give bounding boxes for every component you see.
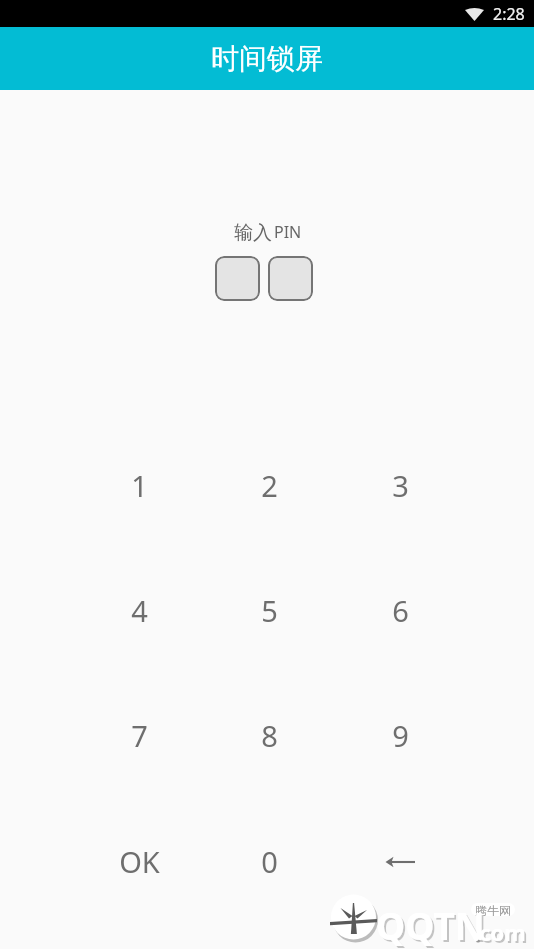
button[interactable]: Backspace: [335, 811, 466, 911]
button[interactable]: 4: [74, 560, 205, 660]
button[interactable]: 7: [74, 685, 205, 785]
staticText: 9: [392, 716, 409, 755]
staticText: PIN: [274, 221, 302, 243]
staticText: OK: [119, 842, 160, 881]
staticText: 7: [131, 716, 148, 755]
button[interactable]: 8: [204, 685, 335, 785]
staticText: 输入: [234, 221, 272, 245]
staticText: 5: [261, 591, 278, 630]
button[interactable]: 1: [74, 435, 205, 535]
staticText: 2: [261, 466, 278, 505]
staticText: 0: [261, 842, 278, 881]
staticText: 4: [131, 591, 148, 630]
staticText: .com: [475, 919, 528, 949]
button[interactable]: 3: [335, 435, 466, 535]
staticText: 时间锁屏: [211, 41, 323, 76]
staticText: 2:28: [493, 3, 525, 25]
staticText: .com: [473, 917, 526, 947]
staticText: 8: [261, 716, 278, 755]
button[interactable]: 6: [335, 560, 466, 660]
button[interactable]: 5: [204, 560, 335, 660]
button[interactable]: 2: [204, 435, 335, 535]
staticText: 1: [131, 466, 148, 505]
button[interactable]: [215, 256, 260, 301]
staticText: 腾牛网: [475, 903, 511, 916]
staticText: QQTN: [376, 900, 485, 949]
staticText: QQTN: [378, 902, 487, 949]
button[interactable]: 0: [204, 811, 335, 911]
staticText: 6: [392, 591, 409, 630]
staticText: 3: [392, 466, 409, 505]
button[interactable]: OK: [74, 811, 205, 911]
button[interactable]: [268, 256, 313, 301]
button[interactable]: 9: [335, 685, 466, 785]
